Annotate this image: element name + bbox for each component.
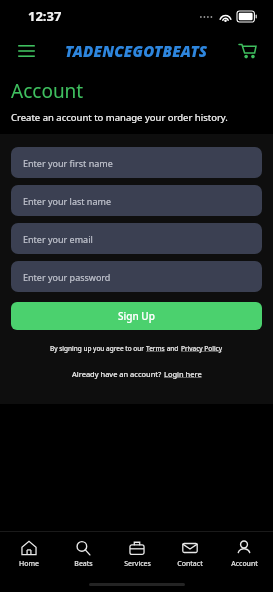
staticText: By signing up you agree to our	[50, 344, 146, 353]
button[interactable]: Enter your password	[11, 261, 262, 292]
staticText: Home	[19, 559, 39, 569]
button[interactable]: Services	[112, 532, 162, 576]
button[interactable]: Cart	[229, 33, 265, 69]
button[interactable]: Home	[4, 532, 54, 576]
staticText: 12:37	[28, 7, 62, 25]
staticText: Terms	[146, 344, 165, 353]
button[interactable]: Enter your email	[11, 223, 262, 254]
staticText: Enter your last name	[23, 195, 111, 207]
button[interactable]: Login here	[164, 369, 202, 379]
staticText: Login here	[164, 369, 202, 379]
staticText: Enter your first name	[23, 157, 113, 169]
staticText: Account	[231, 559, 258, 569]
button[interactable]: Account	[219, 532, 269, 576]
staticText: Enter your email	[23, 233, 93, 245]
staticText: Account	[11, 78, 84, 104]
button[interactable]: Enter your last name	[11, 185, 262, 216]
staticText: and	[165, 344, 181, 353]
staticText: Services	[124, 559, 151, 569]
staticText: Beats	[74, 559, 93, 569]
button[interactable]: Sign Up	[11, 302, 262, 330]
staticText: Already have an account?	[72, 369, 164, 379]
staticText: Enter your password	[23, 271, 111, 283]
staticText: TADENCEGOTBEATS	[65, 41, 208, 61]
staticText: Privacy Policy	[181, 344, 223, 353]
button[interactable]: Terms	[146, 344, 165, 353]
button[interactable]: Beats	[58, 532, 108, 576]
button[interactable]: Menu	[8, 33, 44, 69]
staticText: Sign Up	[118, 309, 155, 323]
button[interactable]: Enter your first name	[11, 147, 262, 178]
button[interactable]: Contact	[165, 532, 215, 576]
staticText: Contact	[177, 559, 203, 569]
button[interactable]: Privacy Policy	[181, 344, 223, 353]
staticText: Create an account to manage your order h…	[11, 111, 228, 124]
